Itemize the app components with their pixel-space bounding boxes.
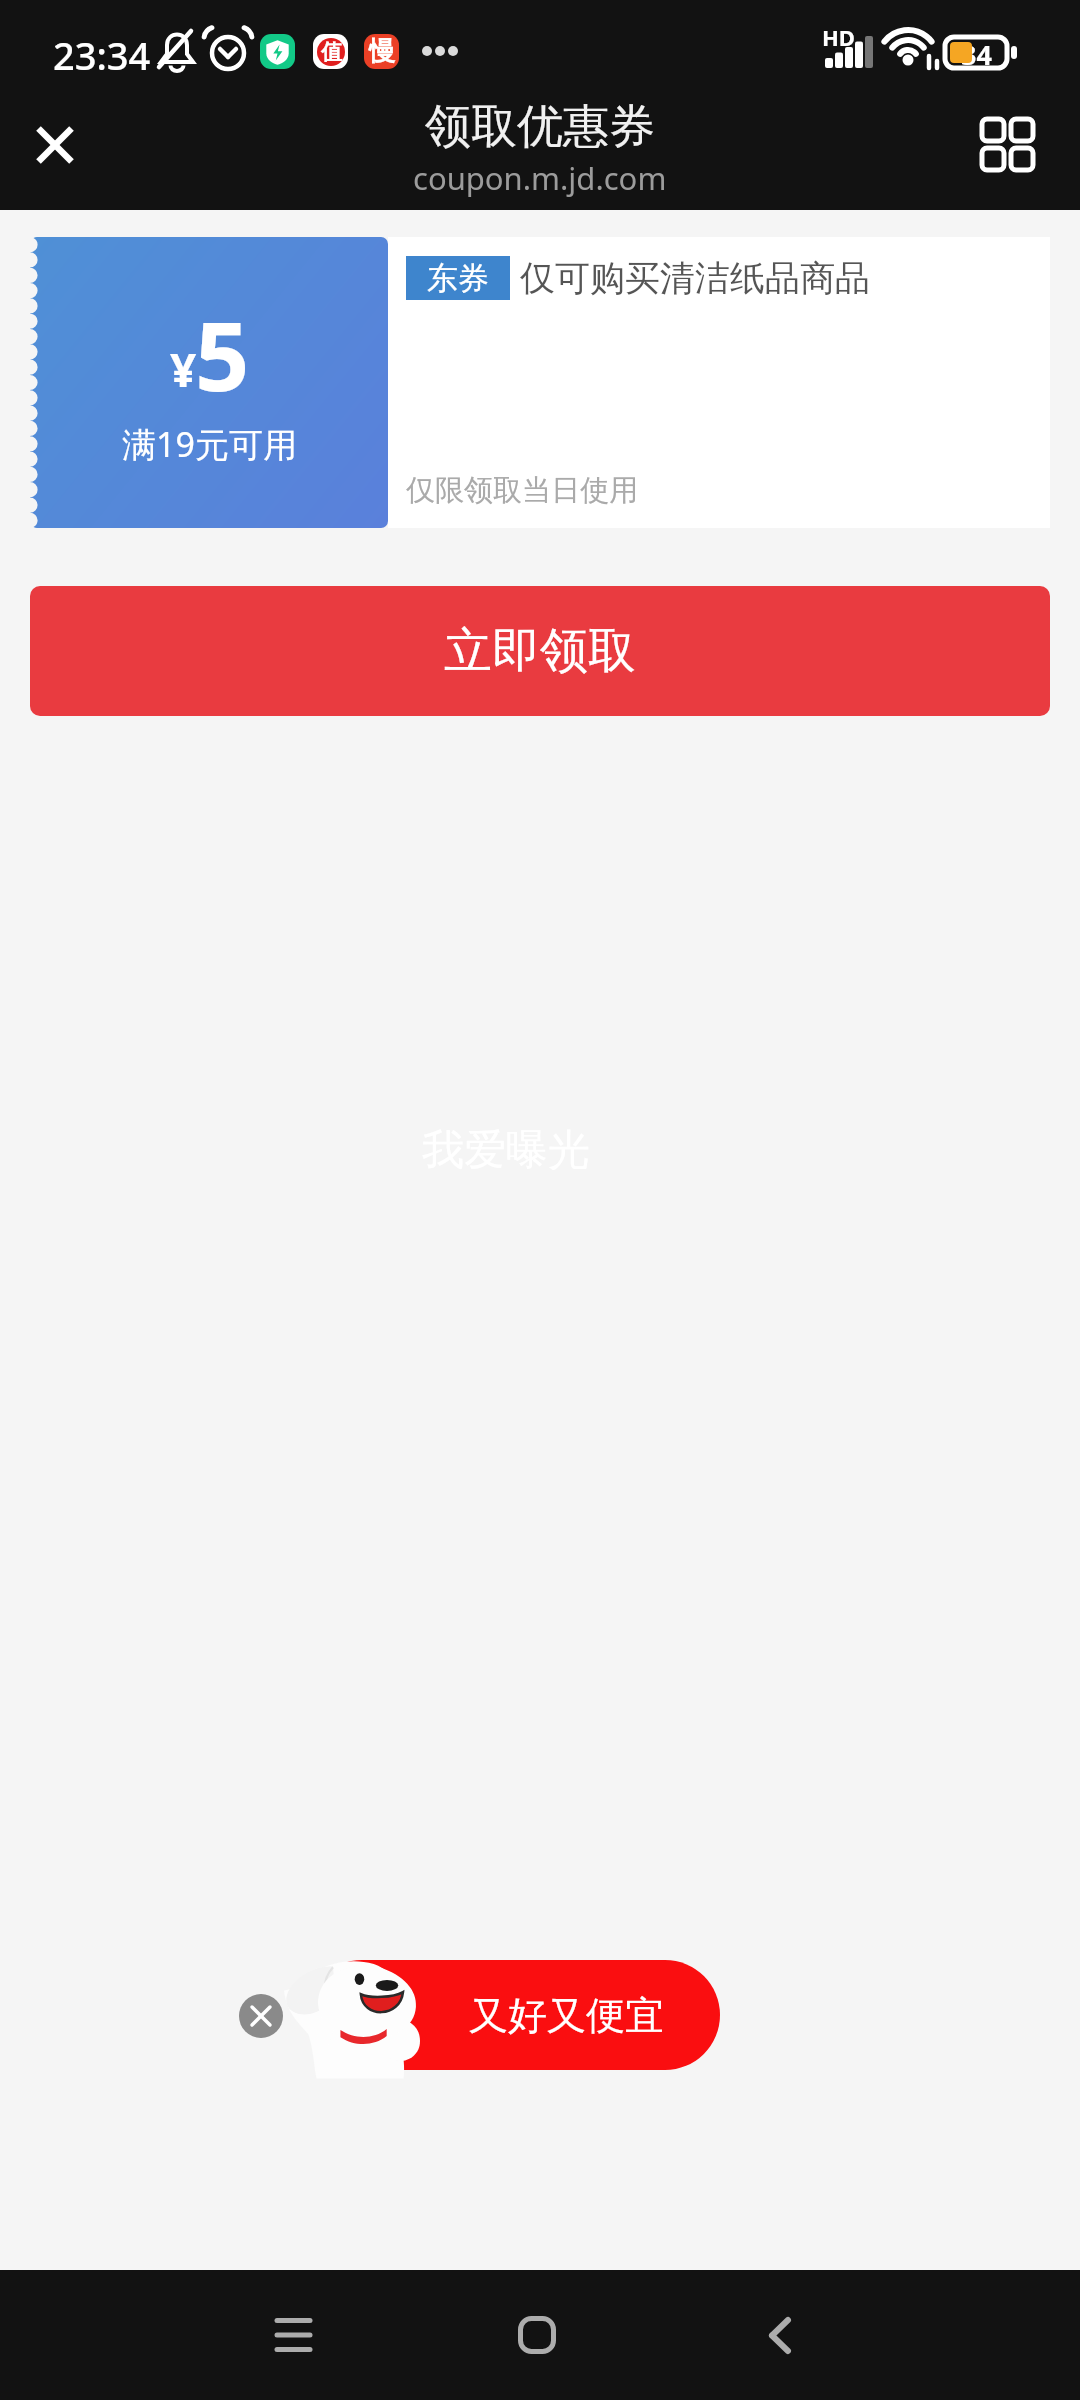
button[interactable]: Close (7, 97, 103, 193)
staticText: coupon.m.jd.com (413, 157, 667, 199)
staticText: 34 (961, 36, 992, 73)
staticText: 领取优惠券 (425, 98, 655, 156)
staticText: 立即领取 (444, 621, 636, 681)
staticText: 值 (321, 39, 342, 65)
button[interactable]: Recent apps (233, 2270, 353, 2400)
staticText: 仅可购买清洁纸品商品 (520, 256, 870, 300)
button[interactable]: Close advertisement (239, 1994, 283, 2038)
staticText: 慢 (369, 35, 395, 68)
staticText: 5 (195, 289, 250, 418)
button[interactable]: 又好又便宜 (307, 1960, 720, 2070)
staticText: 我爱曝光 (422, 1124, 590, 1177)
staticText: 23:34 (53, 29, 151, 81)
button[interactable]: 立即领取 (30, 586, 1050, 716)
staticText: HD (822, 22, 855, 52)
button[interactable]: Home (477, 2270, 597, 2400)
button[interactable]: Back (720, 2270, 840, 2400)
button[interactable]: ¥ (30, 237, 1050, 528)
staticText: 满19元可用 (122, 421, 297, 467)
staticText: 又好又便宜 (469, 1991, 664, 2040)
staticText: 东券 (427, 259, 489, 298)
staticText: 仅限领取当日使用 (406, 472, 638, 509)
staticText: ¥ (170, 338, 197, 401)
button[interactable]: Menu (960, 97, 1056, 193)
